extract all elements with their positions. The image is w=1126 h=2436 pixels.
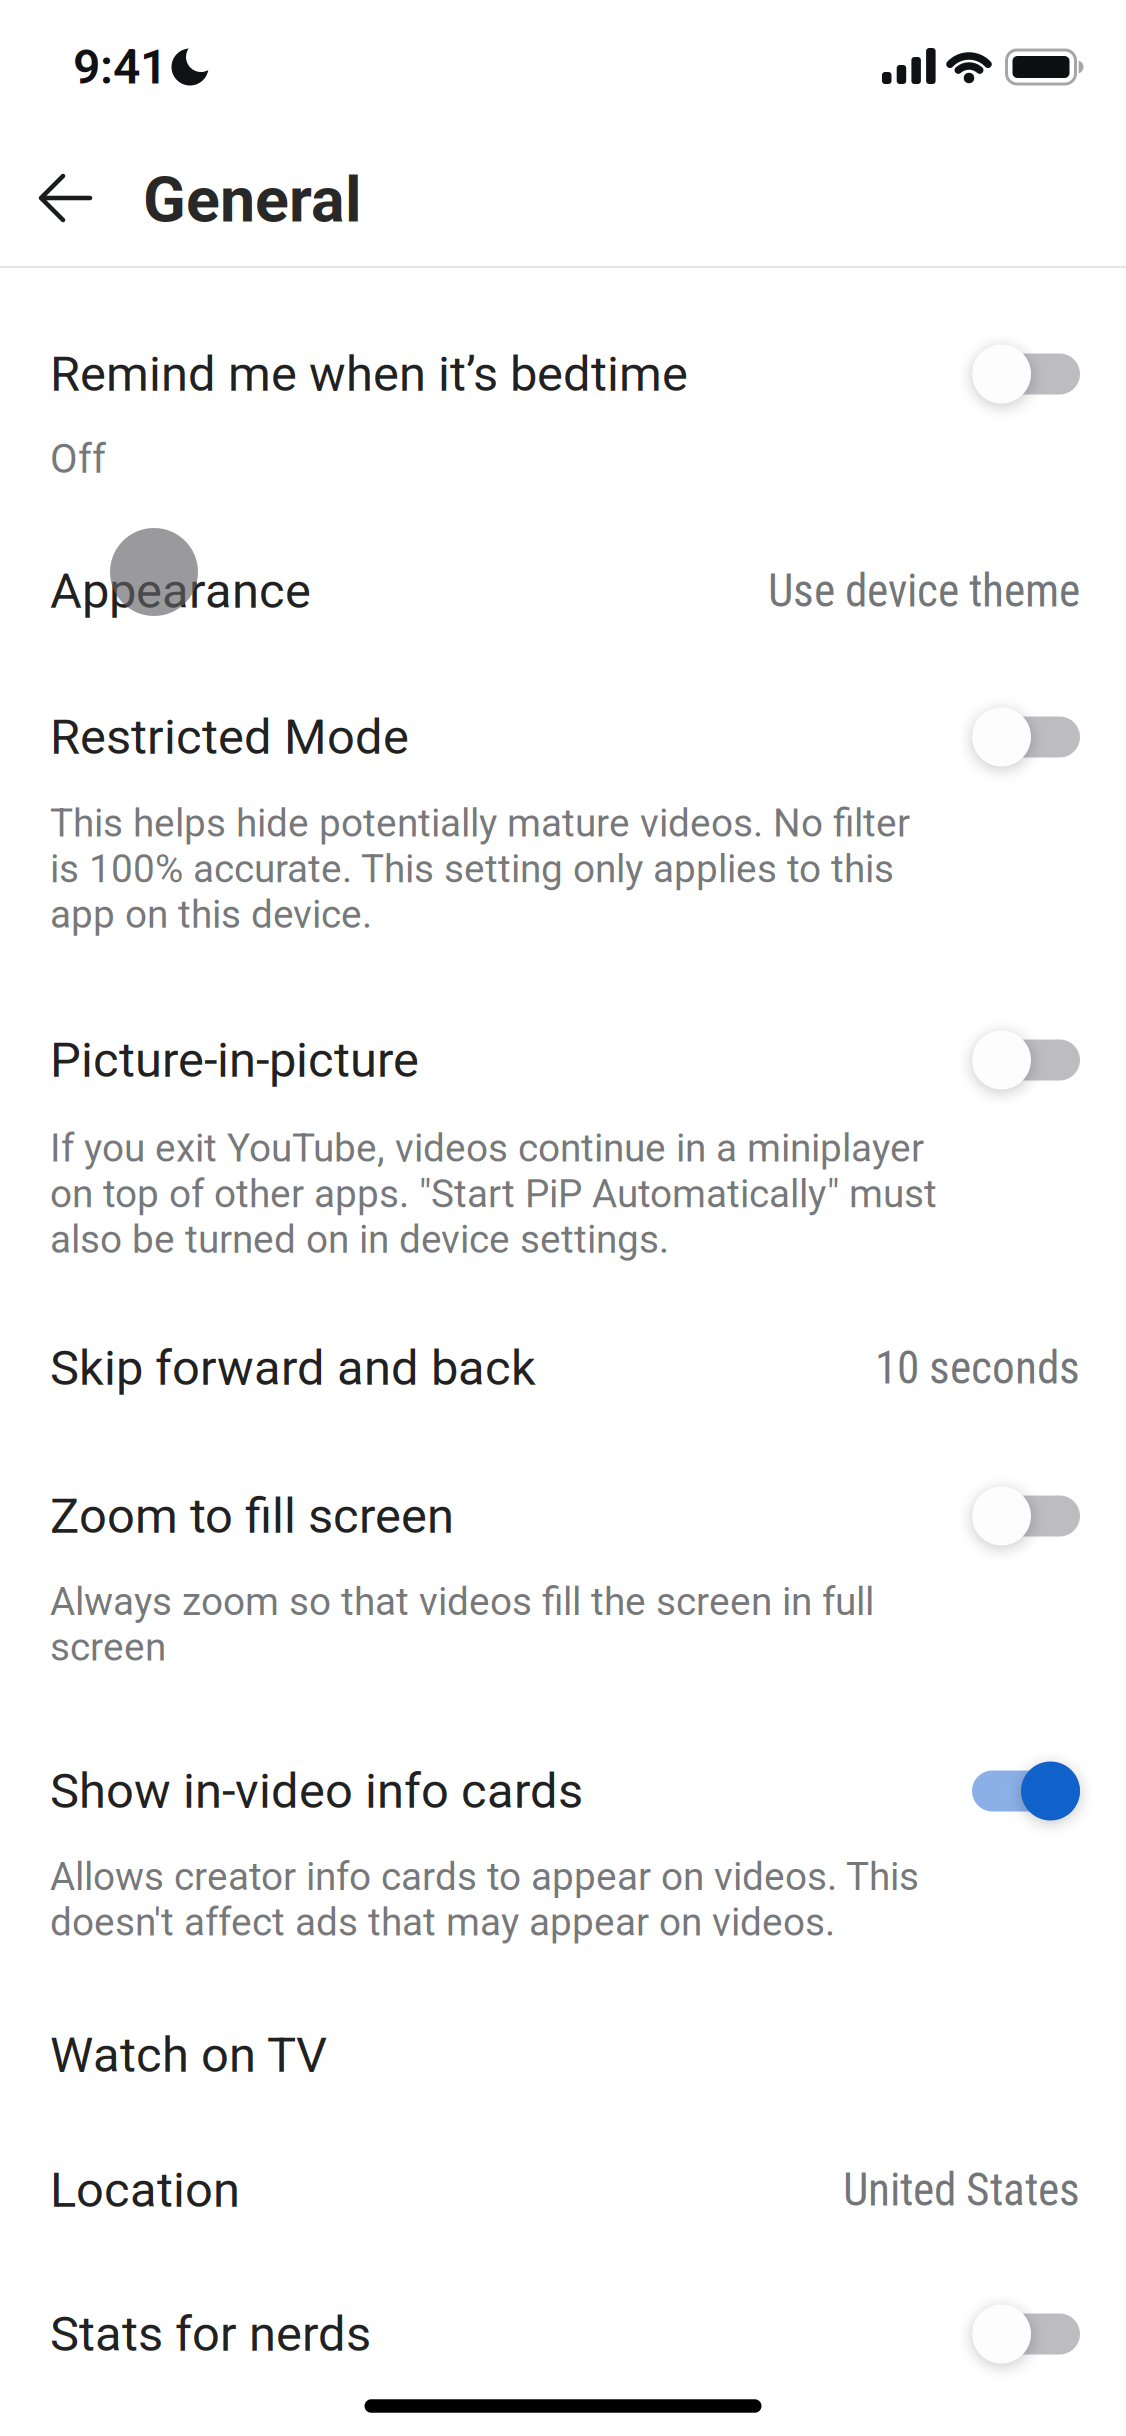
button[interactable]: Location [0,2130,1126,2250]
staticText: Watch on TV [50,2026,327,2084]
staticText: Appearance [50,562,311,620]
button[interactable]: Remind me when it’s bedtime [0,320,1126,500]
staticText: Location [50,2161,240,2219]
button[interactable]: Watch on TV [0,1995,1126,2115]
button[interactable]: Appearance [0,530,1126,650]
staticText: 10 seconds [875,1341,1080,1394]
staticText: Stats for nerds [50,2305,371,2363]
button[interactable]: Zoom to fill screen [0,1455,1126,1685]
staticText: Picture-in-picture [50,1031,419,1089]
button[interactable]: Picture-in-picture [0,1000,1126,1275]
staticText: If you exit YouTube, videos continue in … [50,1126,937,1262]
staticText: Remind me when it’s bedtime [50,345,688,403]
staticText: This helps hide potentially mature video… [50,801,910,937]
staticText: Restricted Mode [50,708,409,766]
staticText: Zoom to fill screen [50,1487,454,1545]
staticText: Off [50,436,106,482]
staticText: 9:41 [73,39,167,95]
button[interactable]: Skip forward and back [0,1310,1126,1430]
staticText: Use device theme [768,564,1080,617]
staticText: Always zoom so that videos fill the scre… [50,1579,874,1670]
staticText: Allows creator info cards to appear on v… [50,1854,919,1945]
button[interactable]: Show in-video info cards [0,1730,1126,1960]
staticText: Skip forward and back [50,1339,536,1397]
staticText: United States [843,2163,1080,2216]
staticText: General [143,163,362,237]
button[interactable]: Back [18,152,110,244]
button[interactable]: Restricted Mode [0,680,1126,950]
staticText: Show in-video info cards [50,1762,583,1820]
button[interactable]: Stats for nerds [0,2275,1126,2395]
